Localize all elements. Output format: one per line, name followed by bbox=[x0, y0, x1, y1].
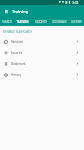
button[interactable]: History bbox=[0, 69, 84, 80]
staticText: Bookmark bbox=[11, 62, 26, 66]
staticText: HISTORY bbox=[71, 20, 82, 23]
staticText: Random bbox=[11, 40, 23, 44]
staticText: DYNAMIC FLASHCARDS bbox=[3, 30, 32, 34]
staticText: FAVORITE bbox=[35, 20, 47, 23]
staticText: Training bbox=[12, 9, 29, 15]
button[interactable]: Open navigation menu bbox=[2, 7, 10, 16]
button[interactable]: Favorite bbox=[0, 47, 84, 58]
staticText: History bbox=[11, 73, 22, 77]
button[interactable]: Random bbox=[0, 36, 84, 47]
button[interactable]: BOOKMARK bbox=[50, 17, 68, 26]
staticText: TRAINING bbox=[16, 20, 29, 23]
staticText: Favorite bbox=[11, 51, 23, 55]
button[interactable]: SEARCH bbox=[0, 17, 13, 26]
staticText: 3:03 bbox=[72, 1, 79, 5]
button[interactable]: HISTORY bbox=[68, 17, 84, 26]
button[interactable]: TRAINING bbox=[13, 17, 32, 26]
staticText: SEARCH bbox=[2, 20, 12, 23]
button[interactable]: Bookmark bbox=[0, 58, 84, 69]
button[interactable]: FAVORITE bbox=[32, 17, 50, 26]
staticText: BOOKMARK bbox=[52, 20, 67, 23]
